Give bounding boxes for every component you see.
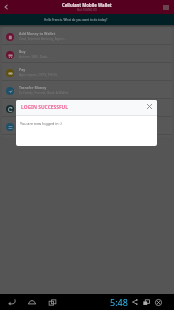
staticText: Pay <box>19 67 26 72</box>
button[interactable]: Back <box>0 1 12 13</box>
button[interactable]: Home <box>26 296 38 308</box>
staticText: You are now logged in :) <box>20 121 62 126</box>
staticText: Agric inputs, DSTV, PHCN... <box>19 73 60 77</box>
staticText: Buy <box>19 49 26 54</box>
staticText: Transfer Money <box>19 85 47 90</box>
button[interactable]: Share <box>130 297 140 307</box>
staticText: Card, Internet Banking, Agent... <box>19 37 67 41</box>
staticText: Settings <box>19 121 34 126</box>
button[interactable]: History <box>2 99 172 117</box>
staticText: Bal: NGN0.00 <box>77 8 97 12</box>
button[interactable]: Back <box>6 296 18 308</box>
staticText: History <box>19 103 32 108</box>
button[interactable]: Menu <box>161 2 171 12</box>
staticText: Add Money to Wallet <box>19 31 56 36</box>
button[interactable]: Pay <box>2 63 172 81</box>
staticText: Airtime, SMS, Data... <box>19 55 50 59</box>
button[interactable]: Screen cast <box>141 297 151 307</box>
staticText: 5:48 <box>110 296 128 308</box>
staticText: Cellulant Mobile Wallet <box>62 2 112 8</box>
button[interactable]: Close <box>144 101 154 111</box>
button[interactable]: Add Money to Wallet <box>2 27 172 45</box>
staticText: Hello Francis. What do you want to do to… <box>44 18 108 22</box>
staticText: To Family, Friends, Bank & Wallet. <box>19 91 69 95</box>
button[interactable]: Settings <box>2 117 172 135</box>
button[interactable]: Do not disturb <box>153 297 163 307</box>
staticText: LOGIN SUCCESSFUL <box>21 104 69 111</box>
button[interactable]: Transfer Money <box>2 81 172 99</box>
button[interactable]: Recent apps <box>46 296 58 308</box>
button[interactable]: Buy <box>2 45 172 63</box>
